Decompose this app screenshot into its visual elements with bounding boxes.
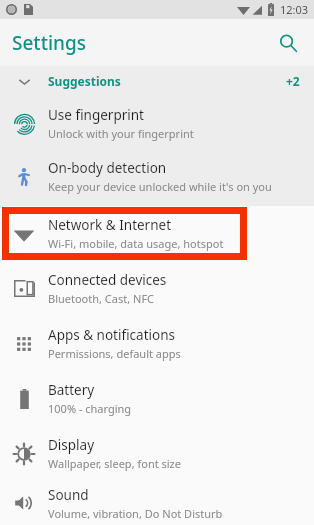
staticText: Keep your device unlocked while it's on … xyxy=(48,179,272,194)
staticText: Unlock with your fingerprint xyxy=(48,126,194,141)
staticText: Wi-Fi, mobile, data usage, hotspot xyxy=(48,236,224,251)
staticText: Permissions, default apps xyxy=(48,346,181,361)
button[interactable]: Display xyxy=(0,426,314,481)
staticText: Sound xyxy=(48,486,89,504)
button[interactable]: Search xyxy=(268,23,308,63)
staticText: Settings xyxy=(12,30,86,56)
staticText: Network & Internet xyxy=(48,216,172,234)
staticText: Volume, vibration, Do Not Disturb xyxy=(48,506,223,521)
button[interactable]: On-body detection xyxy=(0,150,314,203)
button[interactable]: Apps & notifications xyxy=(0,316,314,371)
staticText: Bluetooth, Cast, NFC xyxy=(48,291,155,306)
button[interactable]: Network & Internet xyxy=(0,206,314,261)
staticText: Use fingerprint xyxy=(48,106,144,124)
staticText: 12:03 xyxy=(280,2,309,17)
staticText: Suggestions xyxy=(48,73,121,89)
staticText: Connected devices xyxy=(48,271,167,289)
staticText: +2 xyxy=(286,73,300,89)
staticText: 100% - charging xyxy=(48,401,132,416)
staticText: Battery xyxy=(48,381,95,399)
button[interactable]: Suggestions xyxy=(0,66,314,96)
staticText: Apps & notifications xyxy=(48,326,175,344)
button[interactable]: Use fingerprint xyxy=(0,96,314,150)
staticText: On-body detection xyxy=(48,159,167,177)
button[interactable]: Sound xyxy=(0,481,314,525)
staticText: Wallpaper, sleep, font size xyxy=(48,456,181,471)
button[interactable]: Battery xyxy=(0,371,314,426)
button[interactable]: Connected devices xyxy=(0,261,314,316)
staticText: Display xyxy=(48,436,95,454)
